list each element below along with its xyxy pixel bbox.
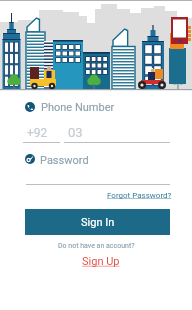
button[interactable]: Sign Up <box>82 255 120 268</box>
button[interactable]: Forgot Password? <box>107 191 172 200</box>
staticText: Phone Number <box>41 101 115 114</box>
staticText: Password <box>40 154 89 167</box>
staticText: Sign In <box>81 216 115 229</box>
staticText: 03 <box>68 125 83 140</box>
staticText: Do not have an account? <box>58 242 135 250</box>
staticText: Sign Up <box>82 255 120 268</box>
staticText: Forgot Password? <box>107 191 172 200</box>
other: Password <box>25 154 35 164</box>
other: Phone <box>25 102 35 112</box>
button[interactable]: Sign In <box>25 209 170 235</box>
staticText: +92 <box>27 126 48 140</box>
